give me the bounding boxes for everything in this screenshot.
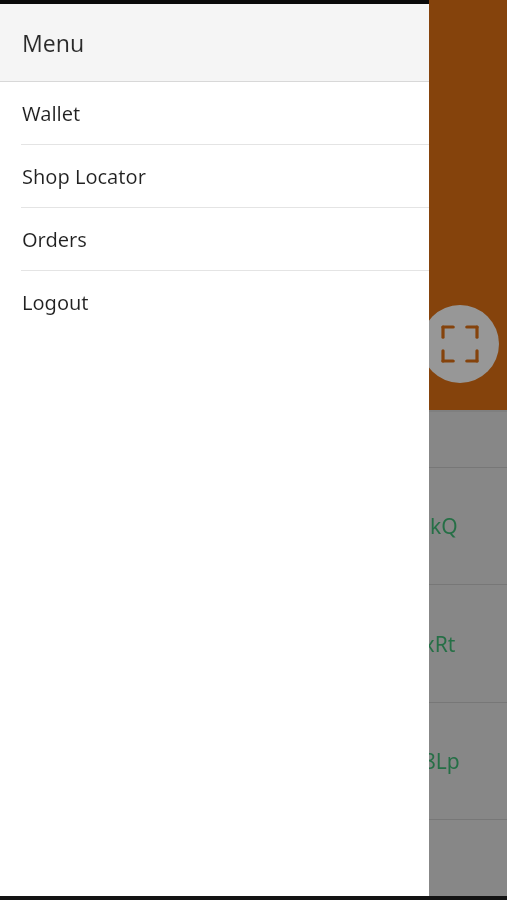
staticText: Wallet (22, 100, 81, 127)
button[interactable]: Logout (0, 271, 429, 333)
button[interactable]: Wallet (0, 82, 429, 144)
button[interactable]: Scan code (421, 305, 499, 383)
button[interactable] (0, 820, 507, 900)
button[interactable]: 2D7Sf3kQ (0, 468, 507, 585)
button[interactable]: Menu (0, 4, 429, 81)
button[interactable] (0, 412, 507, 468)
button[interactable]: Shop Locator (0, 145, 429, 207)
staticText: Logout (22, 289, 89, 316)
staticText: Shop Locator (22, 163, 146, 190)
staticText: 2D7Sf3kQ (360, 512, 458, 541)
button[interactable] (429, 0, 507, 900)
staticText: 0mCTf8Lp (360, 747, 460, 776)
staticText: Menu (22, 27, 85, 58)
button[interactable]: 0mCTf8Lp (0, 703, 507, 820)
button[interactable]: Orders (0, 208, 429, 270)
staticText: Orders (22, 226, 87, 253)
staticText: u9feWxRt (360, 630, 456, 659)
button[interactable]: u9feWxRt (0, 585, 507, 703)
